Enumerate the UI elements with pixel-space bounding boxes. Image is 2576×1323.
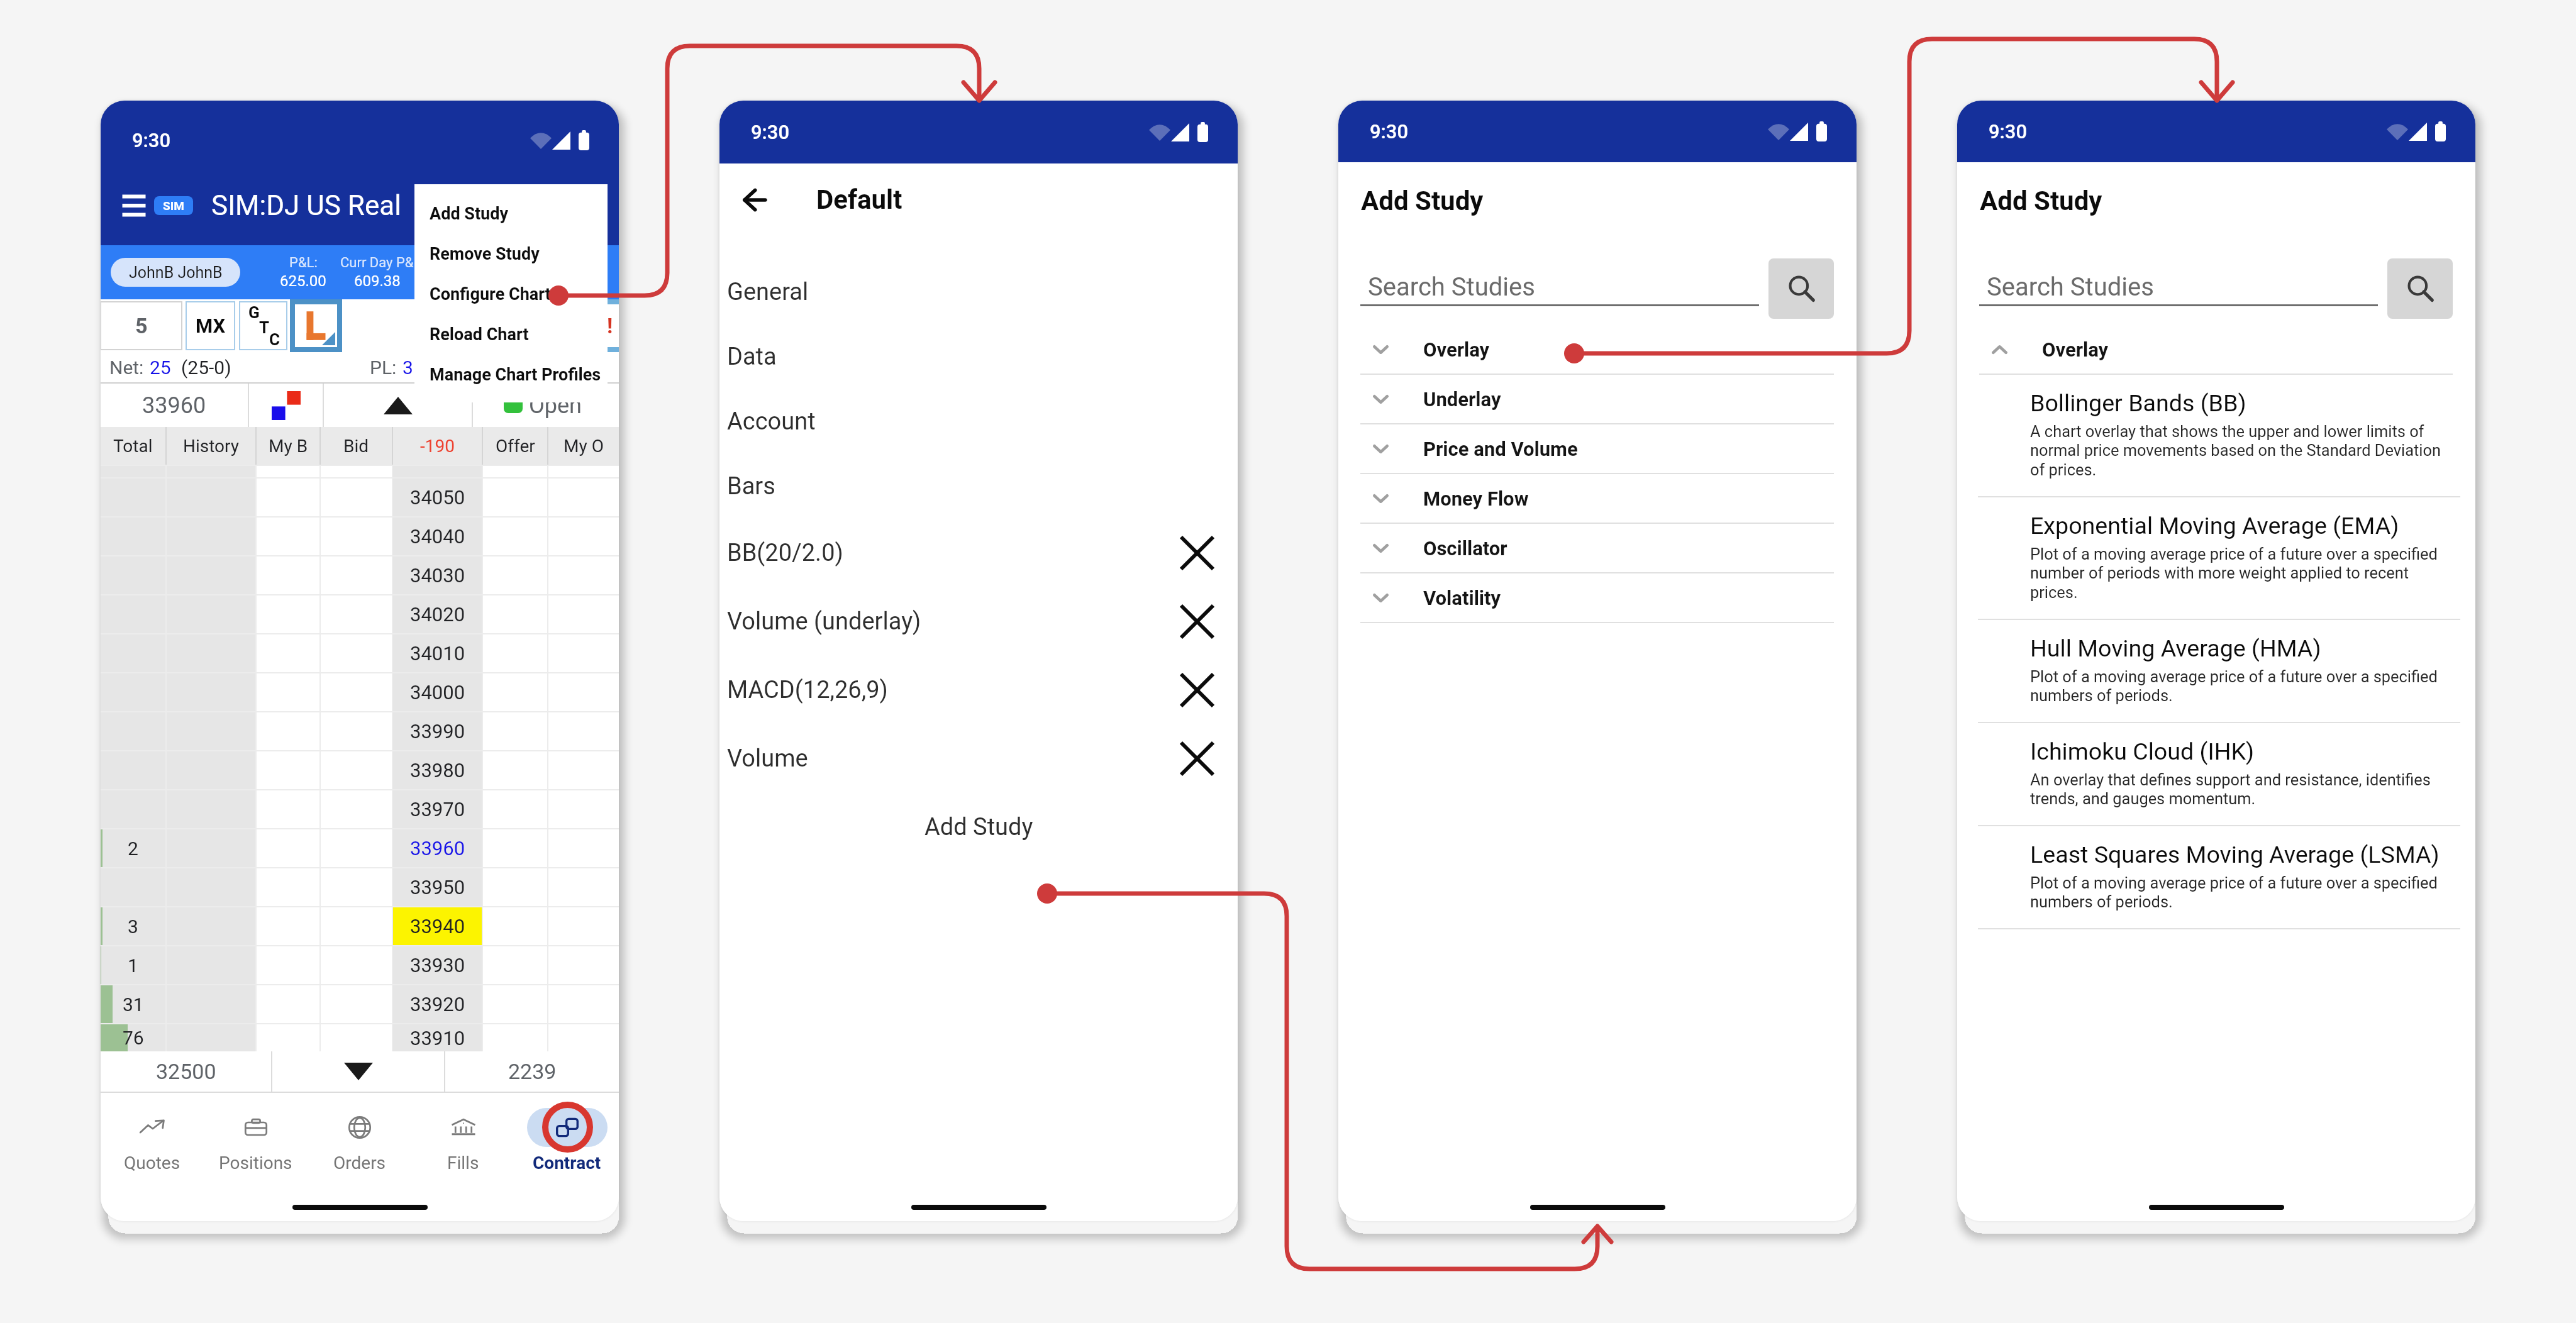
button[interactable]: Remove Volume (underlay) — [1181, 606, 1213, 638]
staticText: Volatility — [1423, 587, 1501, 609]
staticText: T — [259, 318, 270, 337]
staticText: My B — [269, 436, 308, 457]
staticText: 34000 — [410, 681, 465, 704]
button[interactable]: Limit order — [292, 302, 340, 350]
staticText: Bars — [727, 472, 775, 501]
button[interactable]: Account — [719, 389, 1238, 454]
staticText: SIM — [163, 199, 184, 213]
staticText: Search Studies — [1987, 272, 2154, 302]
button[interactable]: BB(20/2.0) — [719, 519, 1238, 587]
staticText: Bid — [343, 436, 369, 457]
staticText: Hull Moving Average (HMA) — [2030, 634, 2321, 662]
staticText: Open — [529, 392, 582, 419]
staticText: Fills — [447, 1153, 479, 1173]
button[interactable]: Underlay — [1338, 375, 1857, 424]
staticText: 31 — [123, 994, 144, 1016]
staticText: Volume — [727, 745, 808, 773]
button[interactable]: Remove BB(20/2.0) — [1181, 537, 1213, 569]
button[interactable]: Add Study — [414, 194, 608, 234]
button[interactable]: General — [719, 260, 1238, 324]
staticText: Add Study — [1980, 185, 2102, 216]
button[interactable]: Orders — [308, 1093, 411, 1193]
button[interactable]: Configure Chart — [414, 274, 608, 314]
staticText: 34010 — [410, 642, 465, 665]
button[interactable]: Remove Study — [414, 234, 608, 274]
staticText: A chart overlay that shows the upper and… — [2030, 422, 2453, 479]
staticText: Volume (underlay) — [727, 607, 921, 636]
staticText: 33970 — [410, 798, 465, 821]
staticText: 33950 — [410, 876, 465, 899]
staticText: 9:30 — [751, 121, 790, 143]
button[interactable]: Least Squares Moving Average (LSMA) — [1957, 826, 2475, 929]
staticText: 76 — [123, 1027, 144, 1049]
button[interactable]: Manage Chart Profiles — [414, 355, 608, 395]
staticText: 32500 — [156, 1059, 216, 1084]
staticText: Add Study — [430, 204, 508, 224]
button[interactable]: Hull Moving Average (HMA) — [1957, 620, 2475, 723]
button[interactable]: Quotes — [101, 1093, 204, 1193]
button[interactable]: Search — [2387, 258, 2453, 319]
button[interactable]: Ichimoku Cloud (IHK) — [1957, 723, 2475, 826]
button[interactable]: G — [240, 302, 287, 350]
staticText: -190 — [420, 436, 455, 457]
button[interactable]: JohnB JohnB — [111, 258, 240, 287]
staticText: Search Studies — [1368, 272, 1535, 302]
staticText: Add Study — [924, 813, 1033, 841]
button[interactable]: 32500 — [101, 1051, 271, 1092]
button[interactable]: Volume (underlay) — [719, 587, 1238, 656]
staticText: G — [248, 303, 260, 322]
button[interactable]: MX — [186, 302, 235, 350]
button[interactable]: Add Study — [719, 793, 1238, 861]
staticText: 2239 — [508, 1059, 557, 1084]
button[interactable]: Scroll down — [272, 1051, 444, 1092]
button[interactable]: Menu — [119, 192, 148, 219]
staticText: 625.00 — [280, 272, 326, 290]
button[interactable]: Price and Volume — [1338, 424, 1857, 474]
staticText: Price and Volume — [1423, 438, 1578, 460]
staticText: MACD(12,26,9) — [727, 676, 888, 704]
button[interactable]: Bollinger Bands (BB) — [1957, 375, 2475, 497]
button[interactable]: Overlay — [1957, 325, 2475, 375]
staticText: Exponential Moving Average (EMA) — [2030, 512, 2399, 540]
button[interactable]: Remove Volume — [1181, 743, 1213, 775]
staticText: 33940 — [410, 915, 465, 938]
staticText: Ichimoku Cloud (IHK) — [2030, 738, 2255, 765]
button[interactable]: Order type — [249, 384, 323, 427]
staticText: Curr Day P& — [340, 255, 414, 271]
button[interactable]: MACD(12,26,9) — [719, 656, 1238, 724]
staticText: Offer — [496, 436, 535, 457]
button[interactable]: Volume — [719, 724, 1238, 793]
staticText: Account — [727, 407, 816, 436]
button[interactable]: SIM — [154, 196, 193, 215]
staticText: 2 — [128, 838, 138, 860]
staticText: Manage Chart Profiles — [430, 365, 601, 385]
staticText: Plot of a moving average price of a futu… — [2030, 545, 2453, 602]
button[interactable]: Sell — [585, 302, 619, 350]
button[interactable]: Bars — [719, 454, 1238, 519]
button[interactable]: Search Studies — [1979, 258, 2378, 306]
button[interactable]: Positions — [204, 1093, 308, 1193]
staticText: Positions — [219, 1153, 292, 1173]
staticText: 1 — [128, 955, 138, 977]
staticText: Money Flow — [1423, 487, 1529, 510]
button[interactable]: Fills — [411, 1093, 515, 1193]
button[interactable]: Back — [743, 189, 766, 211]
button[interactable]: Money Flow — [1338, 474, 1857, 524]
button[interactable]: 2239 — [445, 1051, 619, 1092]
button[interactable]: Data — [719, 324, 1238, 389]
staticText: 9:30 — [1989, 120, 2028, 143]
staticText: Remove Study — [430, 244, 540, 264]
button[interactable]: Search — [1768, 258, 1834, 319]
button[interactable]: Increase — [324, 384, 472, 427]
button[interactable]: Exponential Moving Average (EMA) — [1957, 497, 2475, 620]
staticText: Plot of a moving average price of a futu… — [2030, 667, 2453, 705]
staticText: Total — [113, 436, 153, 457]
button[interactable]: Volatility — [1338, 573, 1857, 623]
button[interactable]: Remove MACD(12,26,9) — [1181, 674, 1213, 706]
button[interactable]: Reload Chart — [414, 314, 608, 355]
button[interactable]: Oscillator — [1338, 524, 1857, 573]
button[interactable]: Overlay — [1338, 325, 1857, 375]
button[interactable]: Search Studies — [1360, 258, 1759, 306]
button[interactable]: Contract — [515, 1093, 619, 1193]
staticText: History — [183, 436, 240, 457]
